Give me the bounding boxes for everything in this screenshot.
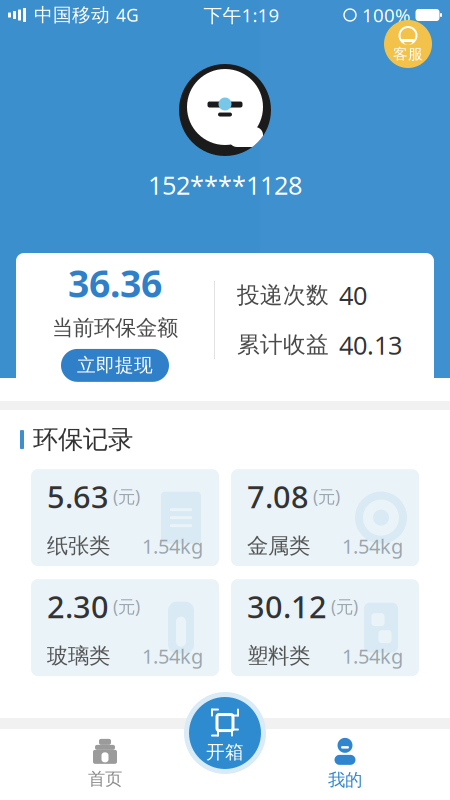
staticText: 36.36	[68, 258, 162, 308]
staticText: 2.30	[47, 586, 109, 627]
staticText: 下午1:19	[203, 3, 279, 27]
staticText: 我的	[328, 769, 362, 791]
staticText: (元)	[113, 485, 140, 508]
button[interactable]: 立即提现	[61, 349, 169, 382]
staticText: 40	[339, 278, 367, 312]
staticText: 投递次数	[237, 281, 329, 309]
staticText: (元)	[331, 595, 358, 618]
staticText: 1.54kg	[142, 533, 203, 559]
staticText: 立即提现	[77, 354, 153, 377]
staticText: 客服	[393, 45, 423, 63]
staticText: 环保记录	[33, 424, 133, 455]
staticText: 玻璃类	[47, 643, 110, 669]
button[interactable]: 开箱	[184, 692, 266, 774]
staticText: (元)	[113, 595, 140, 618]
staticText: 金属类	[247, 533, 310, 559]
button[interactable]: 首页	[60, 734, 150, 794]
staticText: 100%	[362, 3, 411, 27]
staticText: 30.12	[247, 586, 327, 627]
staticText: 152****1128	[148, 168, 302, 202]
staticText: 7.08	[247, 476, 309, 517]
button[interactable]: 7.08	[231, 469, 419, 566]
staticText: 1.54kg	[342, 533, 403, 559]
staticText: 开箱	[206, 740, 244, 763]
staticText: 塑料类	[247, 643, 310, 669]
staticText: 当前环保金额	[52, 315, 178, 341]
staticText: 4G	[116, 3, 139, 26]
staticText: 1.54kg	[142, 643, 203, 669]
staticText: (元)	[313, 485, 340, 508]
staticText: 1.54kg	[342, 643, 403, 669]
staticText: 首页	[88, 768, 122, 790]
staticText: 累计收益	[237, 331, 329, 359]
staticText: 中国移动	[34, 3, 110, 26]
staticText: 5.63	[47, 476, 109, 517]
button[interactable]: 客服	[384, 20, 432, 68]
staticText: 40.13	[339, 328, 402, 362]
button[interactable]: 我的	[300, 734, 390, 794]
button[interactable]: 2.30	[31, 579, 219, 676]
button[interactable]: 5.63	[31, 469, 219, 566]
staticText: 纸张类	[47, 533, 110, 559]
button[interactable]: 30.12	[231, 579, 419, 676]
